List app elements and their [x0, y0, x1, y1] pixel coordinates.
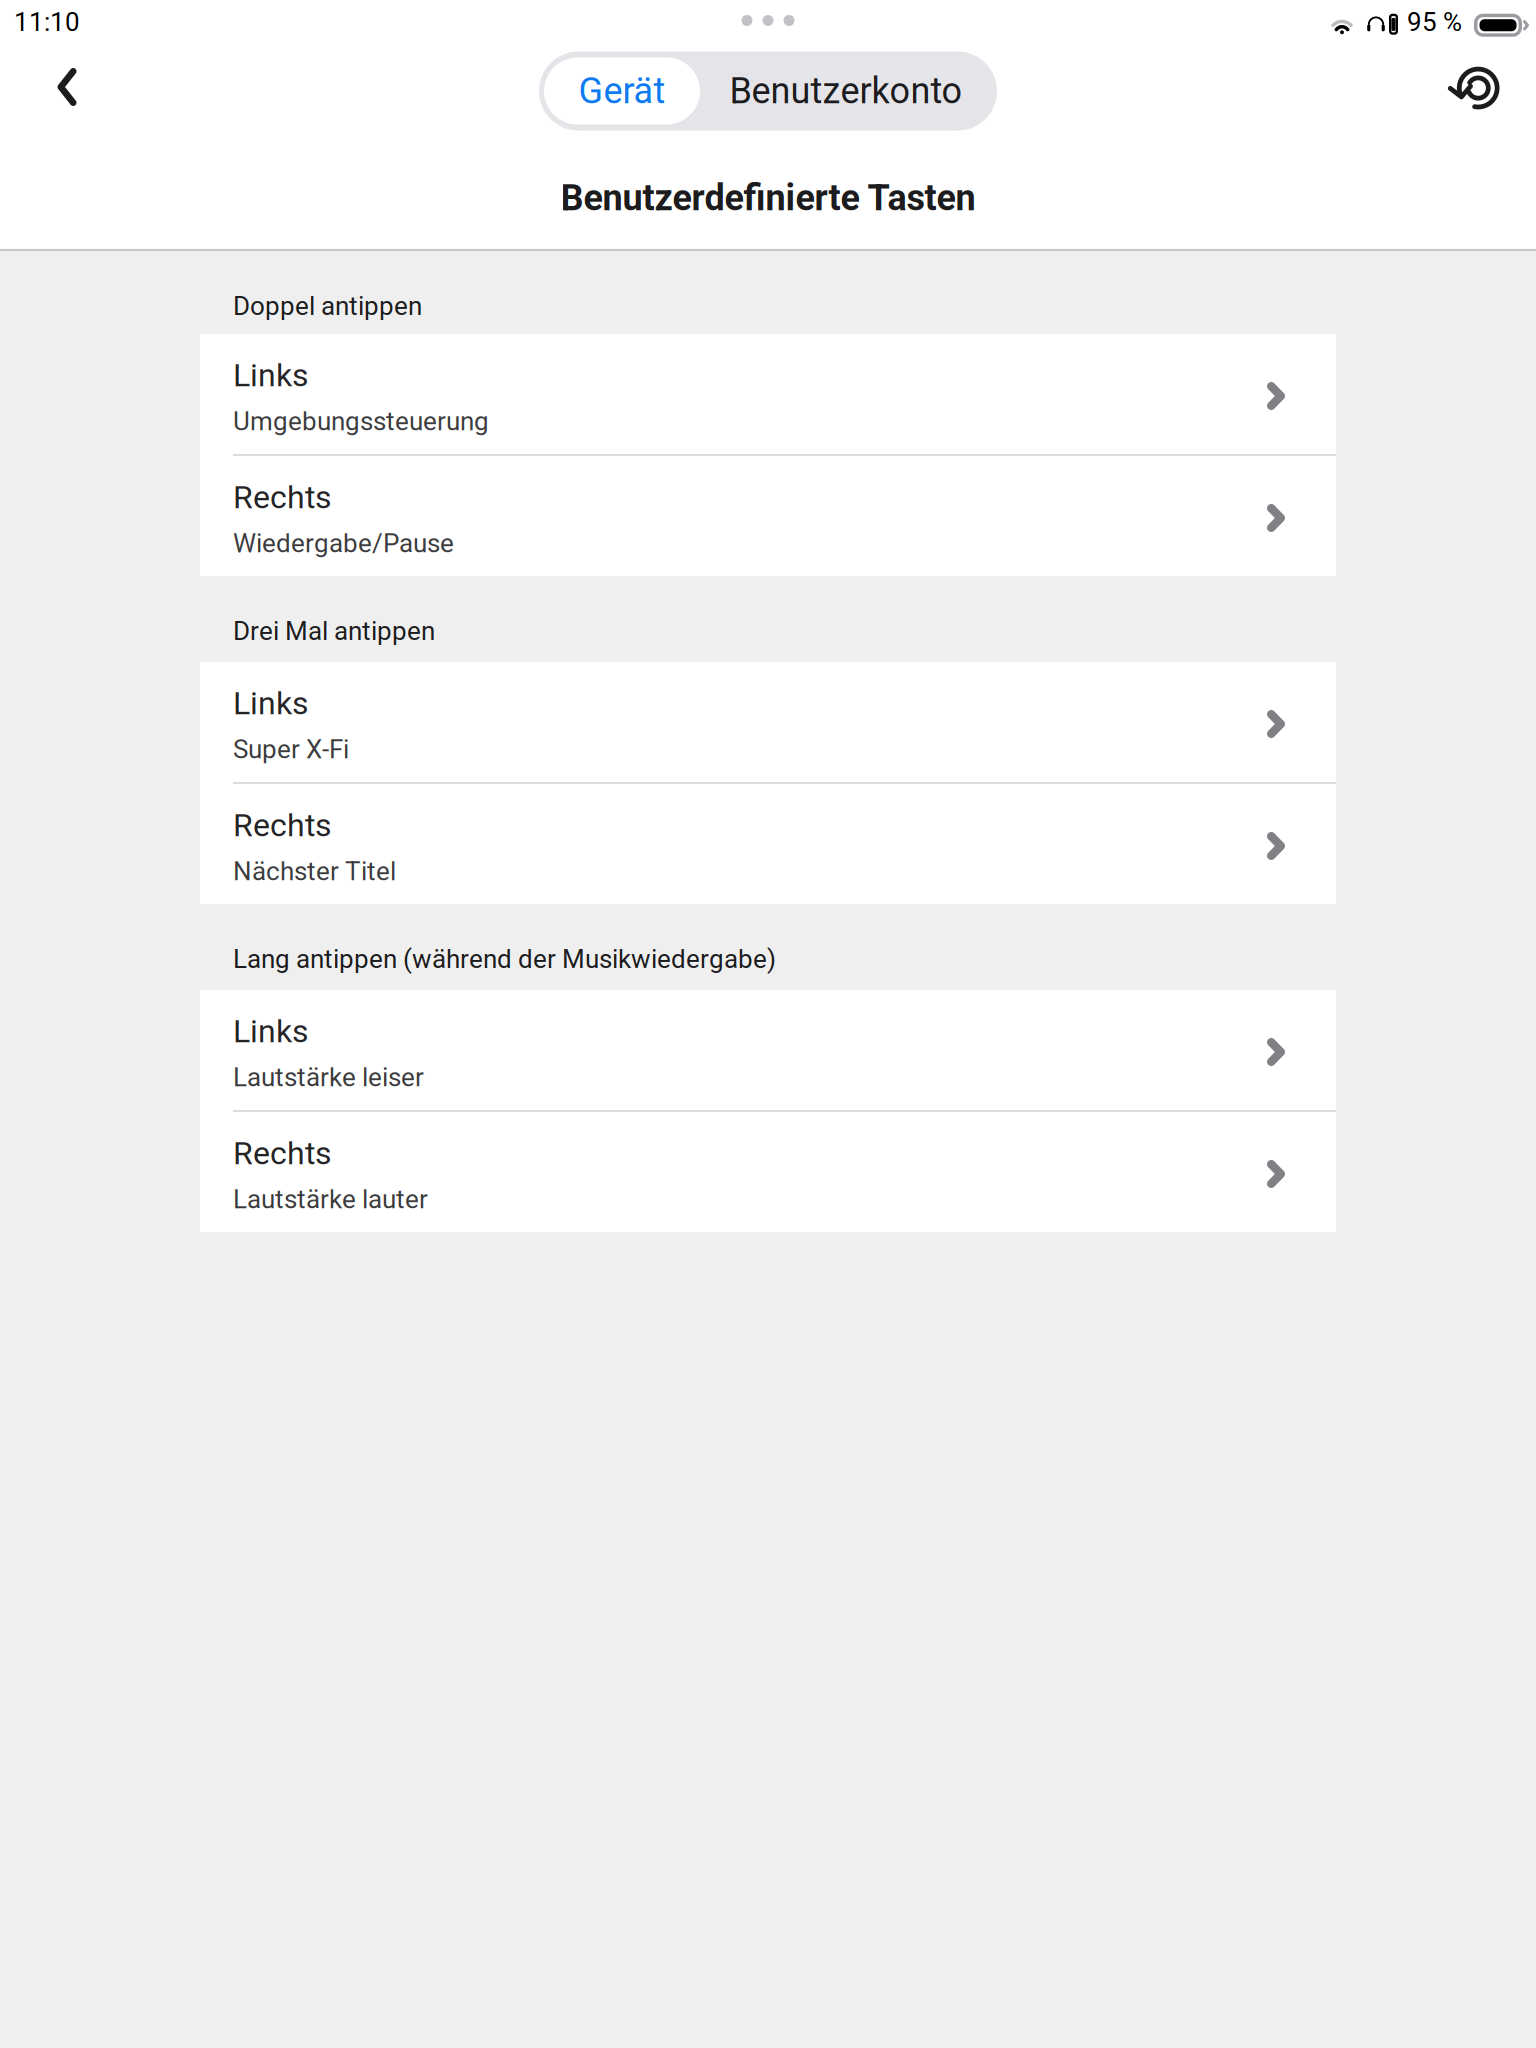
staticText: Links: [233, 356, 309, 394]
staticText: Gerät: [578, 70, 665, 112]
staticText: Rechts: [233, 478, 332, 516]
staticText: Lang antippen (während der Musikwiederga…: [233, 944, 776, 974]
staticText: Rechts: [233, 1134, 332, 1172]
button[interactable]: Links: [200, 334, 1336, 454]
staticText: Wiedergabe/Pause: [233, 528, 454, 558]
button[interactable]: Zurücksetzen: [1434, 48, 1512, 126]
button[interactable]: Benutzerkonto: [700, 57, 992, 124]
button[interactable]: Rechts: [200, 784, 1336, 904]
button[interactable]: Gerät: [544, 57, 700, 124]
button[interactable]: Links: [200, 662, 1336, 782]
staticText: Lautstärke leiser: [233, 1062, 424, 1092]
staticText: Doppel antippen: [233, 291, 422, 321]
staticText: Benutzerkonto: [729, 70, 962, 112]
staticText: Rechts: [233, 806, 332, 844]
button[interactable]: Links: [200, 990, 1336, 1110]
button[interactable]: Rechts: [200, 456, 1336, 576]
staticText: Drei Mal antippen: [233, 616, 435, 646]
staticText: Links: [233, 684, 309, 722]
staticText: 11:10: [14, 7, 80, 37]
staticText: 95 %: [1407, 7, 1462, 37]
staticText: Lautstärke lauter: [233, 1184, 428, 1214]
staticText: Umgebungssteuerung: [233, 406, 489, 436]
button[interactable]: Zurück: [28, 48, 106, 126]
staticText: Links: [233, 1012, 309, 1050]
button[interactable]: Rechts: [200, 1112, 1336, 1232]
staticText: Nächster Titel: [233, 856, 396, 886]
staticText: Benutzerdefinierte Tasten: [560, 177, 975, 219]
staticText: Super X-Fi: [233, 734, 349, 764]
